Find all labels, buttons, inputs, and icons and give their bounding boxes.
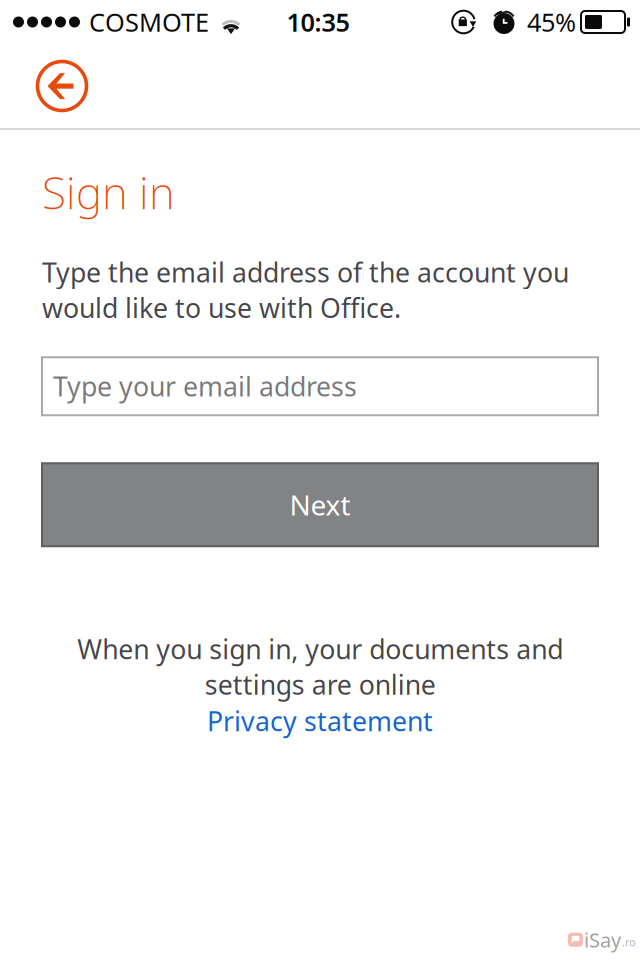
staticText: Next	[289, 486, 350, 523]
staticText: iSay	[584, 926, 621, 953]
staticText: Type the email address of the account yo…	[42, 254, 569, 325]
button[interactable]: Back	[27, 44, 97, 128]
staticText: Privacy statement	[207, 703, 433, 738]
staticText: When you sign in, your documents and set…	[77, 631, 563, 702]
button[interactable]: Privacy statement	[207, 703, 433, 738]
button[interactable]: Type your email address	[42, 357, 598, 415]
staticText: Sign in	[42, 163, 175, 221]
staticText: .ro	[622, 935, 635, 949]
staticText: COSMOTE	[89, 5, 209, 39]
staticText: 10:35	[286, 5, 349, 39]
button[interactable]: Next	[42, 463, 598, 546]
staticText: 45%	[527, 5, 576, 39]
staticText: Type your email address	[53, 368, 357, 404]
